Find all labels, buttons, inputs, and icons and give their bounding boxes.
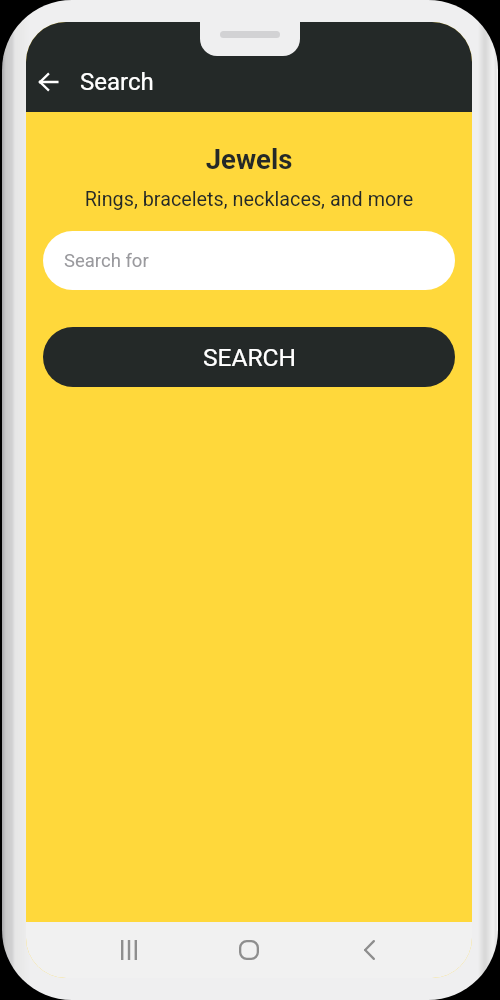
- button[interactable]: SEARCH: [43, 327, 455, 387]
- staticText: SEARCH: [203, 343, 296, 372]
- button[interactable]: Home: [210, 922, 288, 978]
- staticText: Jewels: [26, 143, 472, 175]
- staticText: Search for: [64, 250, 149, 272]
- button[interactable]: Back: [26, 59, 71, 105]
- button[interactable]: Recent apps: [90, 922, 168, 978]
- button[interactable]: Back: [330, 922, 408, 978]
- staticText: Rings, bracelets, necklaces, and more: [26, 188, 472, 211]
- button[interactable]: Search for: [43, 231, 455, 290]
- staticText: Search: [80, 68, 154, 96]
